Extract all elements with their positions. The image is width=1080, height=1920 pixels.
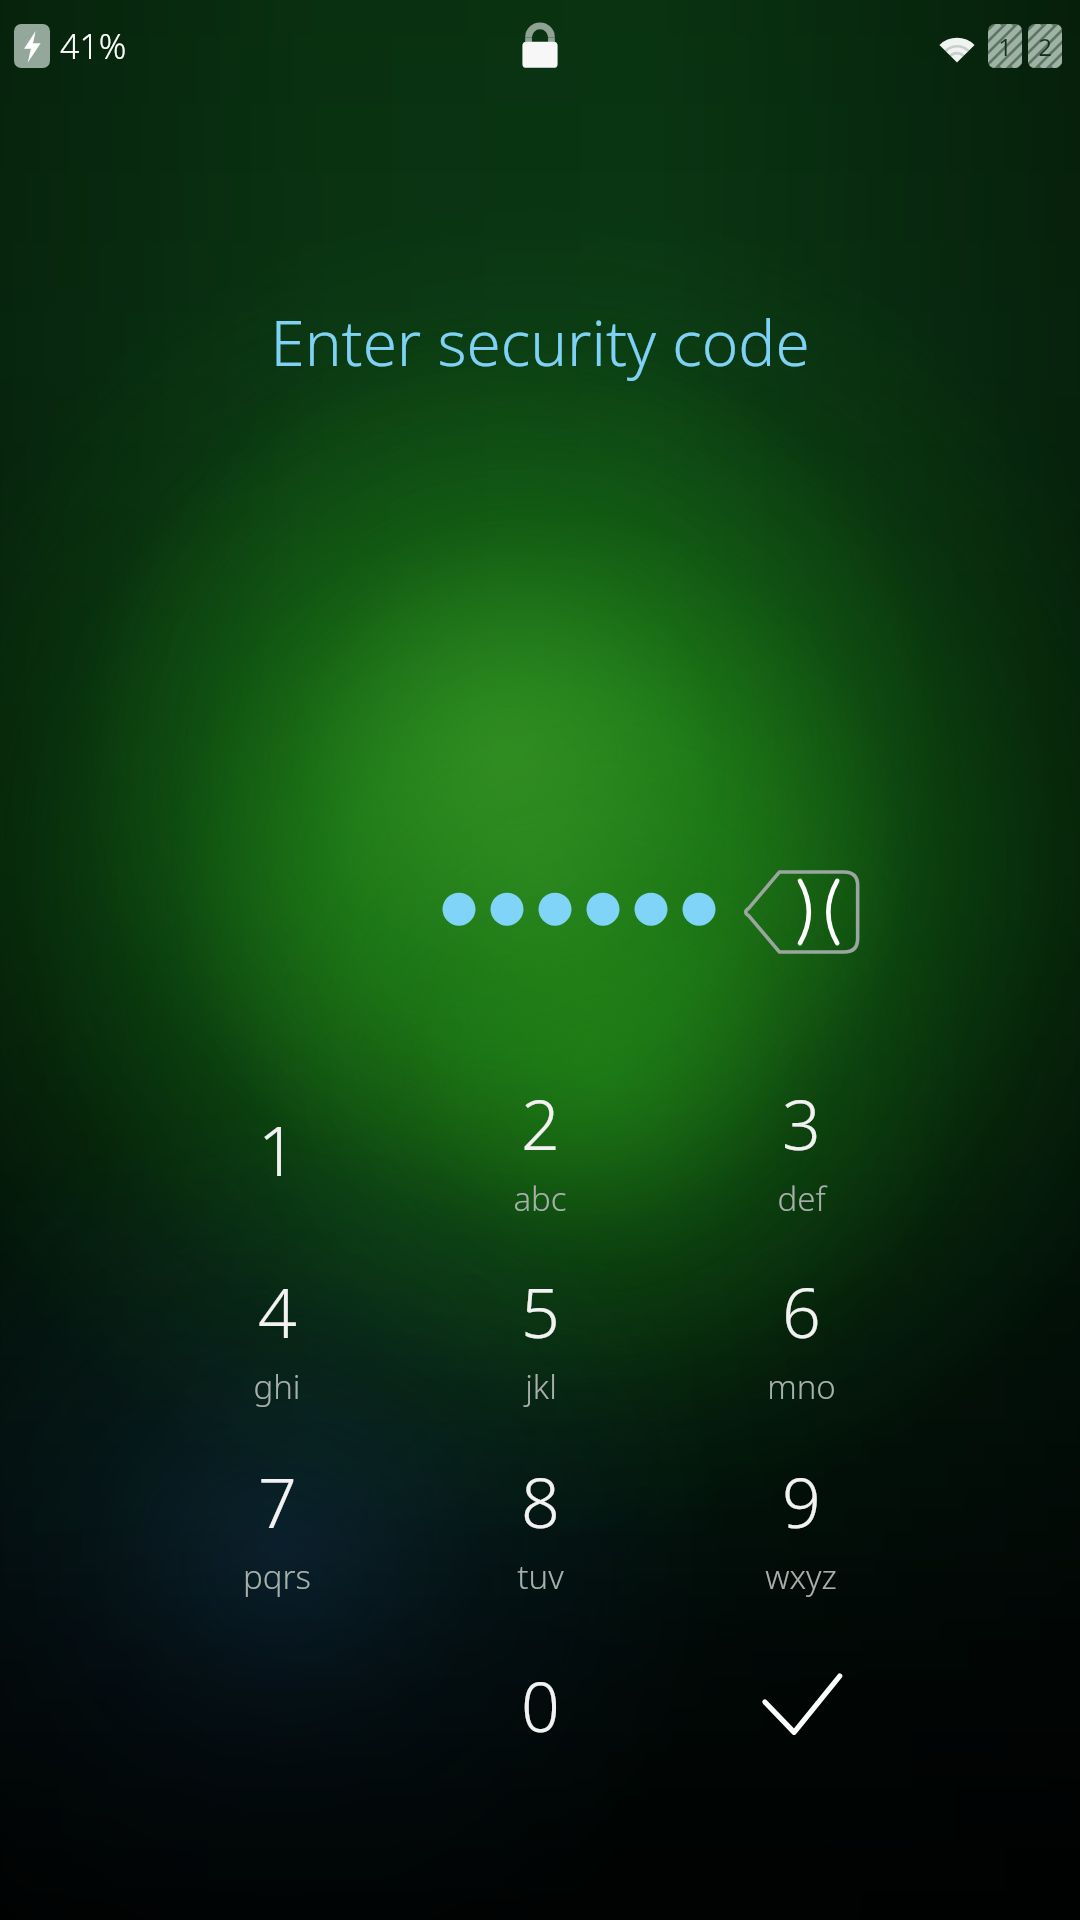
button[interactable]: 7 (152, 1437, 402, 1617)
staticText: Enter security code (0, 300, 1080, 384)
button[interactable]: 0 (415, 1615, 665, 1795)
staticText: 3 (782, 1077, 821, 1170)
button[interactable]: Backspace (738, 860, 862, 964)
staticText: 0 (521, 1659, 560, 1752)
staticText: 6 (782, 1265, 821, 1358)
button[interactable]: 2 (415, 1059, 665, 1239)
staticText: 2 (1038, 30, 1052, 63)
staticText: jkl (525, 1364, 557, 1409)
button[interactable]: 9 (676, 1437, 926, 1617)
other: Charging battery (14, 24, 50, 68)
other: Wi-Fi (934, 28, 980, 64)
staticText: 1 (998, 30, 1012, 63)
button[interactable]: 3 (676, 1059, 926, 1239)
button[interactable]: 6 (676, 1247, 926, 1427)
button[interactable]: 5 (415, 1247, 665, 1427)
button[interactable]: Confirm (676, 1615, 926, 1795)
staticText: 5 (521, 1265, 560, 1358)
staticText: 4 (258, 1265, 297, 1358)
staticText: tuv (517, 1554, 564, 1599)
button[interactable]: 4 (152, 1247, 402, 1427)
staticText: mno (767, 1364, 836, 1409)
staticText: pqrs (243, 1554, 311, 1599)
staticText: ghi (253, 1364, 301, 1409)
staticText: 8 (521, 1455, 560, 1548)
staticText: 1 (258, 1103, 297, 1196)
other: SIM 1 signal (988, 24, 1022, 68)
staticText: 41% (60, 23, 127, 69)
staticText: def (777, 1176, 826, 1221)
button[interactable]: 1 (152, 1059, 402, 1239)
staticText: 9 (782, 1455, 821, 1548)
other: Locked (518, 20, 562, 72)
staticText: wxyz (765, 1554, 837, 1599)
staticText: 7 (258, 1455, 297, 1548)
staticText: abc (513, 1176, 567, 1221)
button[interactable]: 8 (415, 1437, 665, 1617)
staticText: 2 (521, 1077, 560, 1170)
other: SIM 2 signal (1028, 24, 1062, 68)
